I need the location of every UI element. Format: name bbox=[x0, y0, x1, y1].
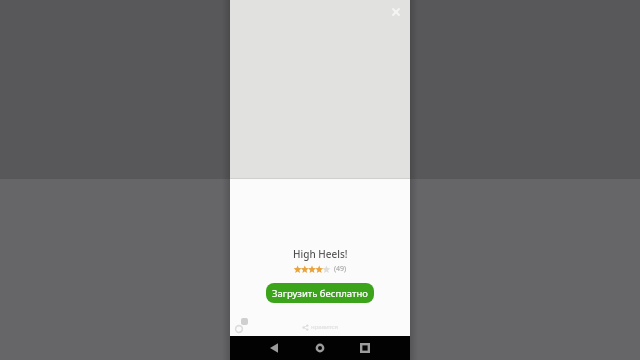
staticText: High Heels! bbox=[293, 247, 348, 261]
button[interactable] bbox=[268, 342, 280, 354]
staticText: Загрузить бесплатно bbox=[272, 287, 368, 300]
button[interactable]: Загрузить бесплатно bbox=[266, 283, 374, 303]
button[interactable] bbox=[359, 342, 371, 354]
staticText: (49) bbox=[334, 264, 347, 274]
button[interactable] bbox=[390, 6, 402, 18]
staticText: нравится bbox=[311, 323, 338, 331]
button[interactable] bbox=[314, 342, 326, 354]
